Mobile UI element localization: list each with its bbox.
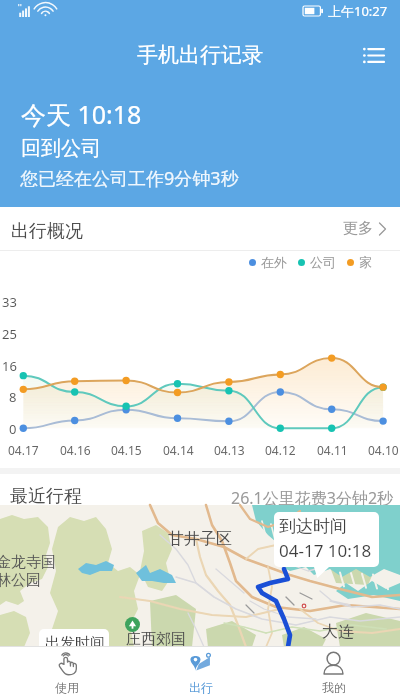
staticText: 33 <box>2 293 17 311</box>
staticText: 庄西郊国 <box>126 630 186 649</box>
staticText: 04.12 <box>265 442 296 458</box>
staticText: 公司 <box>310 254 336 270</box>
button[interactable]: 使用 <box>0 647 134 700</box>
staticText: 25 <box>2 325 17 343</box>
staticText: 04.15 <box>111 442 142 458</box>
staticText: 金龙寺国 <box>0 553 56 572</box>
button[interactable]: 出行 <box>134 647 267 700</box>
staticText: 26.1公里花费3分钟2秒 <box>231 487 394 509</box>
button[interactable]: 更多 <box>337 213 392 244</box>
button[interactable]: Menu <box>358 40 388 70</box>
staticText: 甘井子区 <box>168 529 232 549</box>
staticText: 使用 <box>55 680 79 695</box>
staticText: 上午10:27 <box>328 2 388 20</box>
staticText: 出发时间 <box>45 634 105 653</box>
staticText: 您已经在公司工作9分钟3秒 <box>20 166 239 191</box>
staticText: 8 <box>9 388 17 406</box>
staticText: 家 <box>359 254 372 270</box>
staticText: 04.13 <box>214 442 245 458</box>
staticText: 回到公司 <box>21 136 101 161</box>
staticText: 最近行程 <box>10 485 82 508</box>
staticText: 手机出行记录 <box>137 42 263 68</box>
staticText: 大连 <box>322 622 354 642</box>
staticText: 0 <box>9 420 17 438</box>
staticText: 04.16 <box>60 442 91 458</box>
button[interactable]: 我的 <box>267 647 400 700</box>
staticText: 16 <box>2 357 17 375</box>
staticText: 更多 <box>343 219 373 238</box>
staticText: 出行 <box>189 680 213 695</box>
staticText: 04.17 <box>8 442 39 458</box>
staticText: 04.10 <box>368 442 399 458</box>
staticText: 今天 10:18 <box>21 97 142 131</box>
staticText: 到达时间 <box>279 516 347 537</box>
staticText: 04.14 <box>163 442 194 458</box>
staticText: 我的 <box>322 680 346 695</box>
staticText: 04.11 <box>317 442 348 458</box>
staticText: 林公园 <box>0 571 41 590</box>
staticText: 出行概况 <box>11 220 83 243</box>
staticText: 在外 <box>261 254 287 270</box>
staticText: 04-17 10:18 <box>279 539 372 562</box>
